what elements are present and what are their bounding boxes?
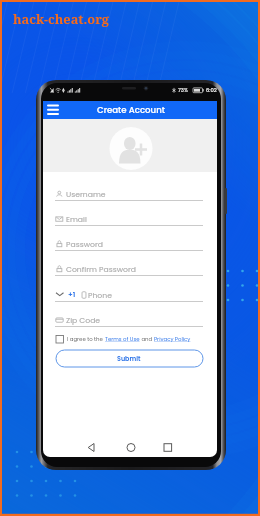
button[interactable]: Confirm Password field: [55, 261, 203, 276]
staticText: Terms of Use: [105, 335, 140, 343]
staticText: Create Account: [97, 104, 165, 116]
button[interactable]: Submit: [56, 350, 203, 367]
staticText: +1: [68, 290, 76, 300]
staticText: Confirm Password: [66, 264, 136, 275]
staticText: 73%: [178, 87, 188, 94]
button[interactable]: Terms of Use: [96, 335, 138, 344]
button[interactable]: Privacy Policy: [149, 335, 194, 344]
staticText: Email: [66, 214, 87, 225]
staticText: and: [140, 335, 154, 343]
button[interactable]: Home: [119, 440, 143, 456]
staticText: Privacy Policy: [154, 335, 191, 343]
button[interactable]: Recents: [156, 440, 180, 456]
staticText: I agree to the: [67, 335, 105, 343]
button[interactable]: Agree to terms checkbox: [56, 335, 64, 343]
staticText: Username: [66, 189, 106, 200]
staticText: Submit: [117, 354, 141, 363]
button[interactable]: Zip Code field: [55, 313, 203, 328]
staticText: Zip Code: [66, 315, 101, 326]
staticText: Phone: [88, 290, 112, 301]
button[interactable]: Email field: [55, 211, 203, 226]
button[interactable]: Menu: [48, 104, 68, 118]
button[interactable]: Phone field: [55, 287, 203, 302]
button[interactable]: Password field: [55, 236, 203, 251]
button[interactable]: Username field: [55, 186, 203, 201]
staticText: Password: [66, 239, 103, 250]
staticText: hack-cheat.org: [13, 10, 110, 27]
staticText: 6:02: [206, 87, 217, 94]
button[interactable]: Back: [80, 440, 104, 456]
